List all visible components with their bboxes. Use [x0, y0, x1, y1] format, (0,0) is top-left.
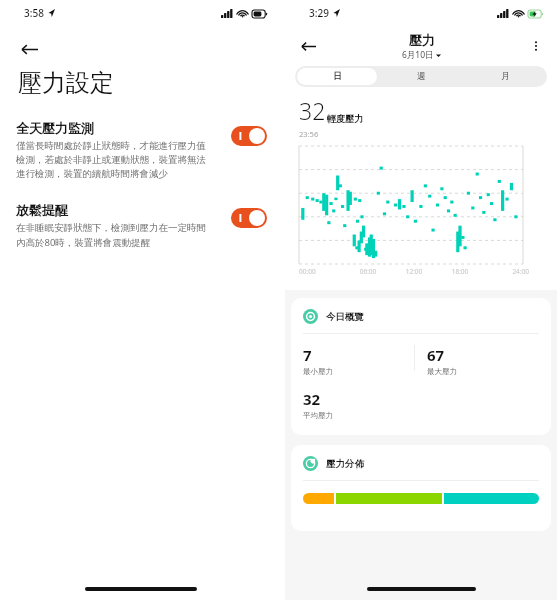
staticText: 00:00: [299, 267, 345, 276]
button[interactable]: 放鬆提醒: [0, 202, 281, 249]
button[interactable]: Back: [12, 32, 46, 66]
staticText: 日: [333, 71, 342, 82]
staticText: 32: [299, 95, 326, 126]
staticText: 週: [417, 71, 426, 82]
staticText: 在非睡眠安靜狀態下，檢測到壓力在一定時間 內高於80時，裝置將會震動提醒: [16, 222, 206, 249]
button[interactable]: Back: [293, 31, 323, 61]
staticText: 23:56: [299, 129, 319, 139]
button[interactable]: 週: [381, 68, 461, 85]
staticText: 全天壓力監測: [16, 120, 94, 136]
staticText: 3:29: [309, 6, 329, 20]
staticText: 最小壓力: [303, 367, 333, 376]
button[interactable]: Toggle on: [231, 126, 267, 146]
staticText: 06:00: [345, 267, 391, 276]
staticText: 18:00: [437, 267, 483, 276]
staticText: 平均壓力: [303, 411, 333, 420]
staticText: 7: [303, 345, 312, 365]
button[interactable]: 全天壓力監測: [0, 120, 281, 180]
staticText: 僅當長時間處於靜止狀態時，才能進行壓力值 檢測，若處於非靜止或運動狀態，裝置將無…: [16, 140, 206, 180]
button[interactable]: 日: [297, 68, 377, 85]
button[interactable]: Toggle on: [231, 208, 267, 228]
staticText: 最大壓力: [427, 367, 457, 376]
button[interactable]: 壓力分佈: [291, 445, 551, 531]
staticText: 今日概覽: [326, 311, 364, 323]
staticText: 32: [303, 389, 321, 409]
button[interactable]: 今日概覽: [291, 298, 551, 435]
staticText: 24:00: [483, 267, 529, 276]
staticText: 6月10日: [402, 49, 434, 61]
staticText: 放鬆提醒: [16, 202, 68, 218]
staticText: 輕度壓力: [327, 113, 363, 124]
button[interactable]: More options: [523, 33, 549, 59]
button[interactable]: 月: [465, 68, 545, 85]
staticText: 67: [427, 345, 445, 365]
staticText: 月: [501, 71, 510, 82]
staticText: 壓力分佈: [326, 458, 364, 470]
staticText: 12:00: [391, 267, 437, 276]
button[interactable]: 壓力: [402, 32, 441, 61]
staticText: 3:58: [24, 6, 44, 20]
staticText: 壓力: [409, 32, 435, 48]
staticText: 壓力設定: [18, 68, 114, 98]
